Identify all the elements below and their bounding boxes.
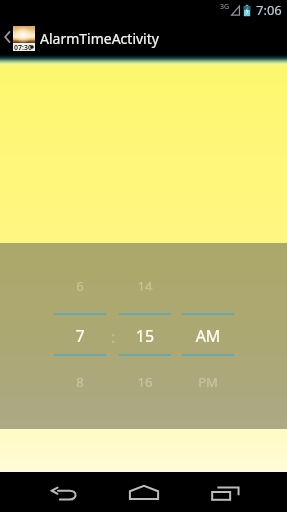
staticText: AM (182, 325, 234, 347)
button[interactable]: Home (105, 472, 183, 512)
staticText: 14 (119, 277, 171, 295)
staticText: : (109, 325, 117, 348)
staticText: 7:06 (256, 1, 282, 19)
button[interactable]: 6 (54, 243, 106, 429)
staticText: 6 (54, 277, 106, 295)
button[interactable]: Recent apps (187, 472, 264, 512)
button[interactable]: Back (27, 472, 101, 512)
button[interactable]: AM (182, 243, 234, 429)
staticText: 16 (119, 373, 171, 391)
staticText: 3G (220, 2, 230, 12)
staticText: PM (182, 373, 234, 391)
staticText: 8 (54, 373, 106, 391)
button[interactable]: Navigate up (0, 20, 14, 54)
staticText: 7 (54, 325, 106, 347)
staticText: 07:30 (14, 43, 32, 51)
staticText: AlarmTimeActivity (40, 29, 159, 48)
button[interactable]: 14 (119, 243, 171, 429)
staticText: 15 (119, 325, 171, 347)
